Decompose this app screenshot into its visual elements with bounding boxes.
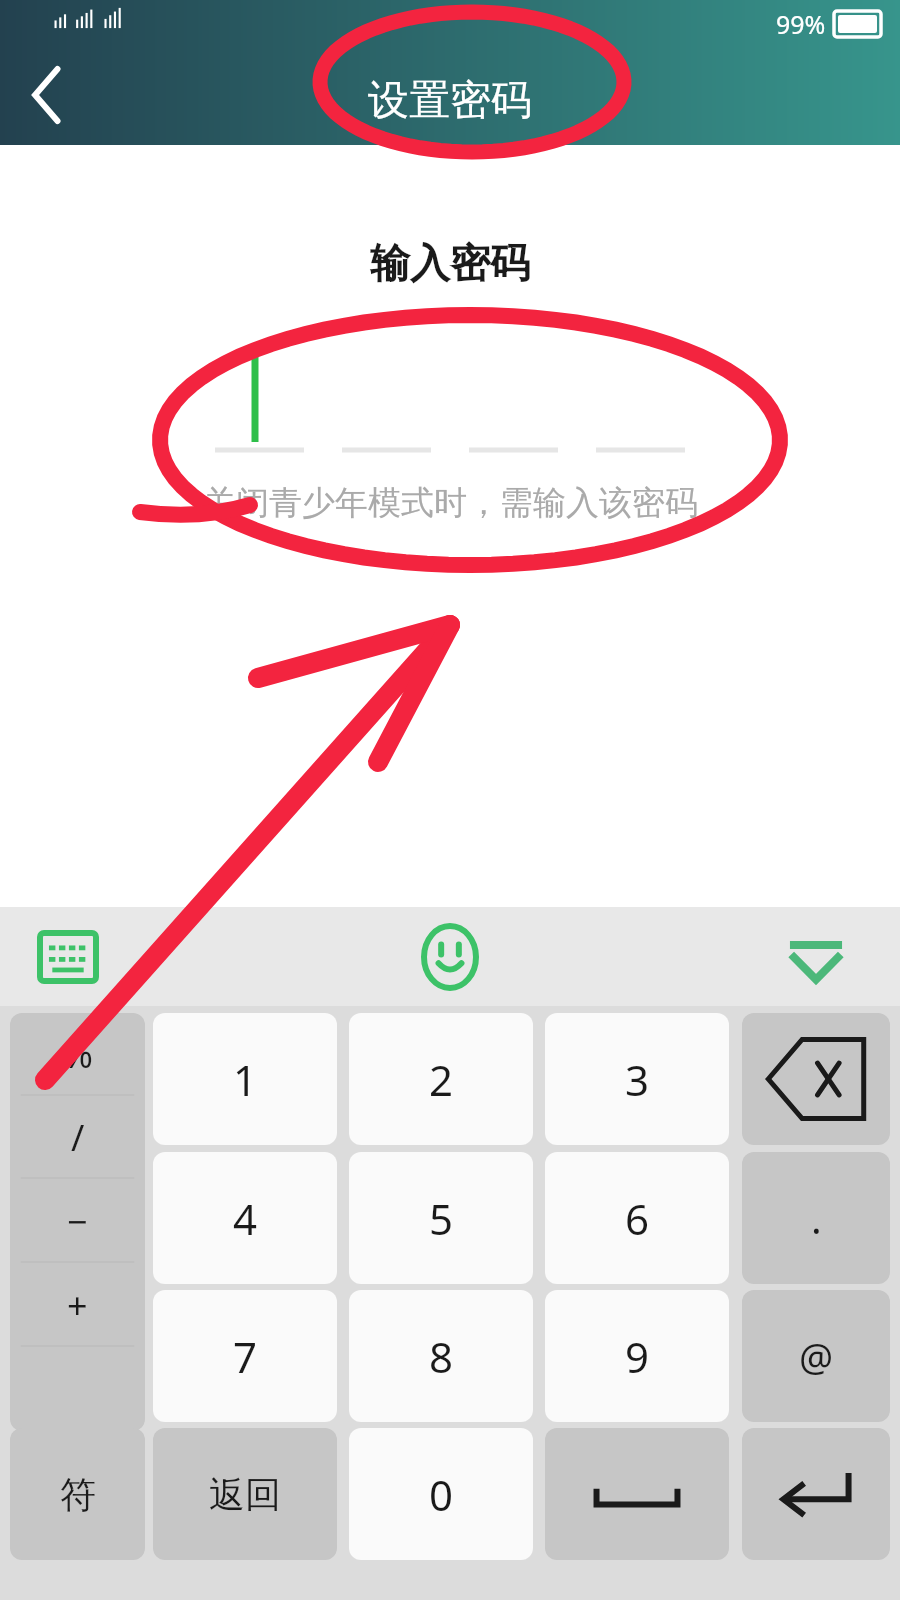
staticText: 输入密码 [370,238,530,288]
button[interactable]: + [10,1263,145,1347]
button[interactable]: 6 [545,1152,729,1284]
staticText: 9 [625,1328,650,1385]
staticText: − [67,1197,88,1246]
staticText: . [811,1191,822,1245]
staticText: 关闭青少年模式时，需输入该密码 [203,482,698,524]
staticText: 符 [60,1472,96,1517]
button[interactable]: 符 [10,1428,145,1560]
button[interactable]: 收起键盘 [772,913,860,1001]
staticText: 99% [776,7,826,41]
staticText: 设置密码 [368,75,532,127]
button[interactable]: 1 [153,1013,337,1145]
button[interactable]: 切换键盘 [24,913,112,1001]
button[interactable]: 返回 [0,47,96,143]
staticText: 4 [233,1190,258,1247]
staticText: 1 [233,1051,258,1108]
button[interactable]: % [10,1013,145,1096]
staticText: 3 [625,1051,650,1108]
button[interactable]: 删除 [742,1013,890,1145]
staticText: 7 [233,1328,258,1385]
button[interactable]: / [10,1096,145,1179]
staticText: 返回 [209,1472,281,1517]
staticText: @ [799,1330,834,1382]
staticText: + [67,1281,88,1330]
button[interactable]: 3 [545,1013,729,1145]
button[interactable]: 返回 [153,1428,337,1560]
staticText: 2 [429,1051,454,1108]
button[interactable]: . [742,1152,890,1284]
button[interactable]: @ [742,1290,890,1422]
staticText: % [63,1030,93,1079]
button[interactable]: 8 [349,1290,533,1422]
button[interactable]: 7 [153,1290,337,1422]
button[interactable]: 表情 [406,913,494,1001]
staticText: 5 [429,1190,454,1247]
button[interactable]: 5 [349,1152,533,1284]
staticText: 8 [429,1328,454,1385]
staticText: 6 [625,1190,650,1247]
staticText: 0 [429,1466,454,1523]
button[interactable]: − [10,1179,145,1263]
button[interactable]: 2 [349,1013,533,1145]
button[interactable]: 9 [545,1290,729,1422]
staticText: / [71,1113,85,1162]
button[interactable]: 空格 [545,1428,729,1560]
button[interactable]: 4 [153,1152,337,1284]
button[interactable]: 0 [349,1428,533,1560]
button[interactable]: 回车 [742,1428,890,1560]
